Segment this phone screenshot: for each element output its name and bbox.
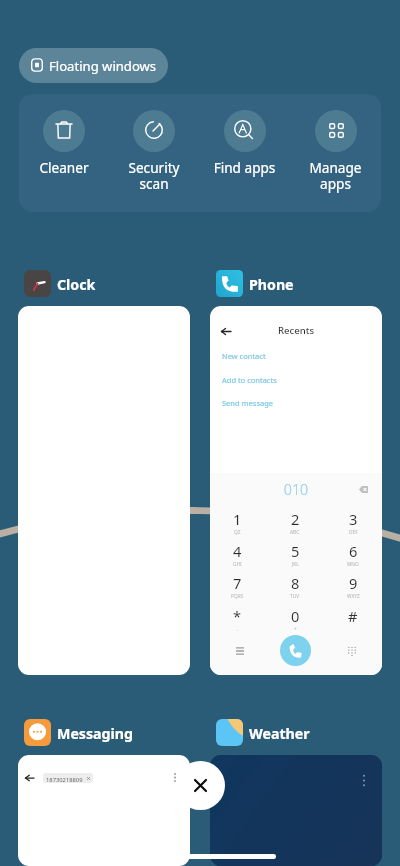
staticText: 3	[349, 509, 358, 529]
button[interactable]: Messaging	[24, 719, 133, 746]
staticText: Add to contacts	[222, 375, 277, 385]
staticText: Weather	[249, 724, 310, 743]
button[interactable]: 2	[275, 509, 315, 541]
staticText: JKL	[292, 561, 299, 568]
button[interactable]: Back	[210, 306, 382, 675]
staticText: 18730218809	[46, 776, 83, 783]
button[interactable]: 6	[333, 541, 373, 573]
staticText: Find apps	[199, 158, 290, 177]
button[interactable]	[210, 755, 382, 866]
button[interactable]: Find apps	[199, 110, 290, 177]
staticText: 4	[233, 541, 242, 561]
button[interactable]: Floating windows	[19, 48, 168, 83]
button[interactable]: Close	[176, 761, 225, 810]
button[interactable]: *	[217, 606, 257, 638]
staticText: *	[233, 606, 242, 626]
staticText: PQRS	[231, 593, 244, 600]
staticText: 2	[291, 509, 300, 529]
button[interactable]	[18, 306, 190, 675]
button[interactable]: Weather	[216, 719, 310, 746]
staticText: MNO	[347, 561, 359, 568]
staticText: +	[294, 626, 297, 633]
staticText: QZ	[234, 529, 241, 536]
button[interactable]: 1	[217, 509, 257, 541]
button[interactable]: Security scan	[109, 110, 199, 193]
button[interactable]: Manage apps	[290, 110, 381, 193]
staticText: Recents	[210, 324, 382, 337]
button[interactable]: 9	[333, 573, 373, 605]
staticText: Floating windows	[49, 57, 157, 75]
button[interactable]: Keypad	[342, 641, 362, 661]
button[interactable]: Clock	[24, 270, 96, 297]
button[interactable]: 7	[217, 573, 257, 605]
staticText: Security scan	[109, 158, 199, 193]
button[interactable]: 0	[275, 606, 315, 638]
button[interactable]: 18730218809	[43, 773, 93, 783]
staticText: Send message	[222, 398, 274, 408]
staticText: Clock	[57, 275, 96, 294]
button[interactable]: Back	[18, 755, 190, 866]
staticText: DEF	[349, 529, 358, 536]
staticText: .	[237, 626, 239, 633]
button[interactable]: Call log	[230, 641, 250, 661]
staticText: #	[348, 606, 358, 626]
button[interactable]: 4	[217, 541, 257, 573]
button[interactable]: Phone	[216, 270, 294, 297]
staticText: 9	[349, 573, 358, 593]
staticText: 6	[349, 541, 358, 561]
staticText: 1	[233, 509, 242, 529]
staticText: 7	[233, 573, 242, 593]
staticText: 010	[210, 480, 382, 499]
staticText: GHI	[233, 561, 242, 568]
button[interactable]: #	[333, 606, 373, 638]
staticText: WXYZ	[347, 593, 360, 600]
staticText: Phone	[249, 275, 294, 294]
button[interactable]: Backspace	[355, 481, 371, 497]
staticText: ABC	[290, 529, 300, 536]
button[interactable]: Call	[280, 635, 311, 666]
staticText: 8	[291, 573, 300, 593]
staticText: TUV	[290, 593, 300, 600]
staticText: Messaging	[57, 724, 133, 743]
button[interactable]: Cleaner	[19, 110, 109, 177]
staticText: 5	[291, 541, 300, 561]
button[interactable]: 8	[275, 573, 315, 605]
staticText: New contact	[222, 351, 266, 361]
staticText: Manage apps	[290, 158, 381, 193]
staticText: 0	[291, 606, 300, 626]
staticText: Cleaner	[19, 158, 109, 177]
button[interactable]: Back	[20, 769, 38, 787]
button[interactable]: 5	[275, 541, 315, 573]
button[interactable]: 3	[333, 509, 373, 541]
button[interactable]: Back	[217, 322, 235, 340]
